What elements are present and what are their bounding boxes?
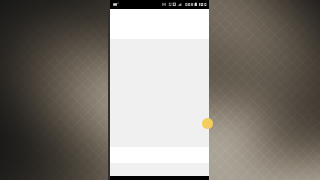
- button[interactable]: Add: [202, 118, 213, 129]
